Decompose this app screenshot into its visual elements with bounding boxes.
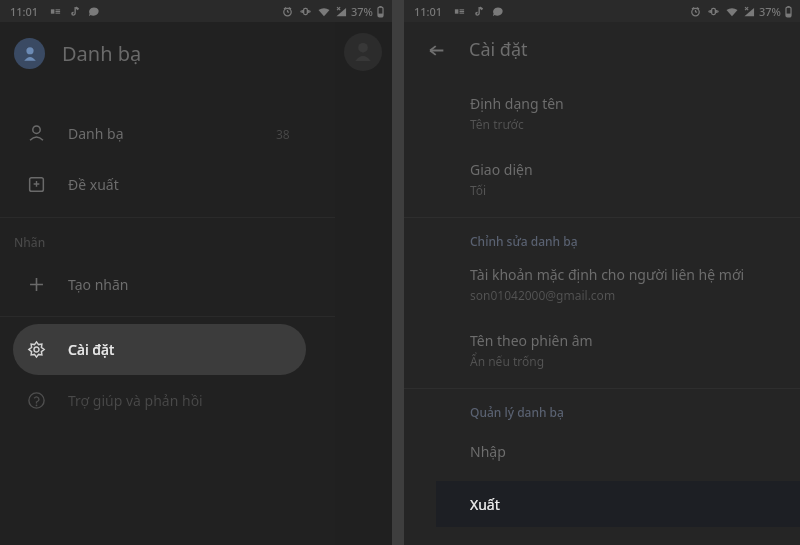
staticText: Ẩn nếu trống <box>470 353 545 369</box>
staticText: Giao diện <box>470 160 533 179</box>
staticText: Nhập <box>470 442 506 461</box>
staticText: Đề xuất <box>68 175 119 194</box>
staticText: Cài đặt <box>469 37 528 62</box>
button[interactable]: Danh bạ <box>13 108 306 159</box>
staticText: Tên trước <box>470 116 524 132</box>
staticText: Tối <box>470 182 487 198</box>
staticText: Tên theo phiên âm <box>470 331 593 350</box>
staticText: Tạo nhãn <box>68 275 129 294</box>
staticText: Định dạng tên <box>470 94 564 113</box>
staticText: Danh bạ <box>62 40 142 67</box>
staticText: Tài khoản mặc định cho người liên hệ mới <box>470 265 745 284</box>
staticText: Xuất <box>470 495 500 514</box>
staticText: 38 <box>276 126 290 142</box>
button[interactable]: Tên theo phiên âm <box>404 324 800 376</box>
button[interactable]: Xuất <box>436 481 800 527</box>
staticText: 37% <box>759 4 781 19</box>
staticText: Quản lý danh bạ <box>470 404 564 420</box>
button[interactable]: Back <box>416 30 456 70</box>
button[interactable]: Giao diện <box>404 153 800 205</box>
button[interactable]: Tài khoản mặc định cho người liên hệ mới <box>404 258 800 310</box>
staticText: 11:01 <box>414 4 443 19</box>
staticText: Chỉnh sửa danh bạ <box>470 233 578 249</box>
button[interactable]: Định dạng tên <box>404 87 800 139</box>
staticText: Nhãn <box>14 234 46 250</box>
button[interactable]: Cài đặt <box>13 324 306 375</box>
staticText: son01042000@gmail.com <box>470 287 616 303</box>
button[interactable]: Tạo nhãn <box>13 259 306 310</box>
button[interactable]: Account <box>344 33 382 71</box>
staticText: 11:01 <box>10 4 39 19</box>
staticText: 37% <box>351 4 373 19</box>
button[interactable]: Đề xuất <box>13 159 306 210</box>
staticText: Danh bạ <box>68 124 124 143</box>
staticText: Cài đặt <box>68 340 115 359</box>
button[interactable]: Trợ giúp và phản hồi <box>13 375 306 426</box>
staticText: Trợ giúp và phản hồi <box>68 391 203 410</box>
button[interactable]: Nhập <box>404 429 800 473</box>
